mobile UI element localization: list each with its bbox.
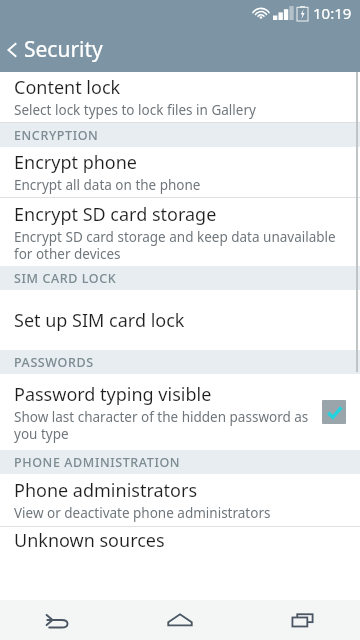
button[interactable]: Content lock [0, 72, 360, 122]
staticText: Encrypt phone [14, 150, 137, 175]
button[interactable]: Back to Security [0, 26, 360, 72]
staticText: PASSWORDS [14, 354, 94, 371]
staticText: Content lock [14, 75, 121, 100]
staticText: PHONE ADMINISTRATION [14, 454, 181, 471]
button[interactable]: Recent apps [276, 600, 330, 640]
button[interactable]: Encrypt phone [0, 147, 360, 197]
button[interactable]: Set up SIM card lock [0, 290, 360, 350]
staticText: Show last character of the hidden passwo… [14, 408, 314, 443]
button[interactable]: Encrypt SD card storage [0, 198, 360, 266]
staticText: Password typing visible [14, 382, 212, 407]
staticText: Phone administrators [14, 478, 198, 503]
staticText: ENCRYPTION [14, 127, 99, 144]
staticText: Encrypt all data on the phone [14, 176, 201, 194]
button[interactable]: Password typing visible [0, 374, 360, 450]
staticText: Encrypt SD card storage and keep data un… [14, 228, 344, 263]
button[interactable]: Phone administrators [0, 474, 360, 526]
button[interactable]: Home [153, 600, 207, 640]
staticText: Set up SIM card lock [14, 308, 185, 333]
button[interactable]: Back [30, 600, 84, 640]
staticText: Select lock types to lock files in Galle… [14, 101, 256, 119]
staticText: Encrypt SD card storage [14, 202, 217, 227]
staticText: Security [24, 35, 103, 64]
staticText: 10:19 [313, 3, 352, 23]
staticText: View or deactivate phone administrators [14, 504, 271, 522]
staticText: Unknown sources [14, 528, 165, 552]
staticText: SIM CARD LOCK [14, 270, 117, 287]
